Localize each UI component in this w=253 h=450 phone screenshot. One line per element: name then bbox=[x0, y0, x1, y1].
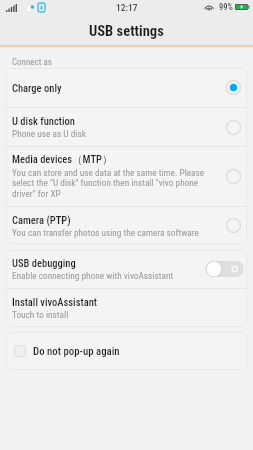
staticText: USB debugging bbox=[12, 257, 76, 269]
staticText: Phone use as U disk bbox=[12, 128, 86, 139]
button[interactable]: Do not pop-up again bbox=[6, 332, 247, 370]
button[interactable]: Install vivoAssistant bbox=[6, 289, 247, 327]
button[interactable]: USB debugging toggle bbox=[206, 261, 244, 277]
staticText: 12:17 bbox=[116, 2, 138, 13]
button[interactable]: Charge only bbox=[6, 68, 247, 107]
staticText: Media devices（MTP） bbox=[12, 153, 113, 166]
staticText: Enable connecting phone with vivoAssista… bbox=[12, 270, 174, 281]
staticText: Charge only bbox=[12, 82, 62, 94]
staticText: You can transfer photos using the camera… bbox=[12, 227, 199, 238]
button[interactable]: USB debugging bbox=[6, 250, 247, 288]
staticText: Do not pop-up again bbox=[33, 345, 120, 358]
staticText: Connect as bbox=[12, 57, 52, 68]
button[interactable]: Media devices（MTP） bbox=[6, 147, 247, 206]
staticText: You can store and use data at the same t… bbox=[12, 167, 219, 200]
staticText: USB settings bbox=[89, 23, 164, 40]
staticText: Install vivoAssistant bbox=[12, 296, 97, 308]
staticText: Touch to install bbox=[12, 309, 69, 320]
staticText: Camera (PTP) bbox=[12, 214, 71, 226]
button[interactable]: Camera (PTP) bbox=[6, 207, 247, 244]
staticText: 99% bbox=[219, 2, 233, 12]
button[interactable]: U disk function bbox=[6, 108, 247, 146]
staticText: U disk function bbox=[12, 115, 75, 127]
